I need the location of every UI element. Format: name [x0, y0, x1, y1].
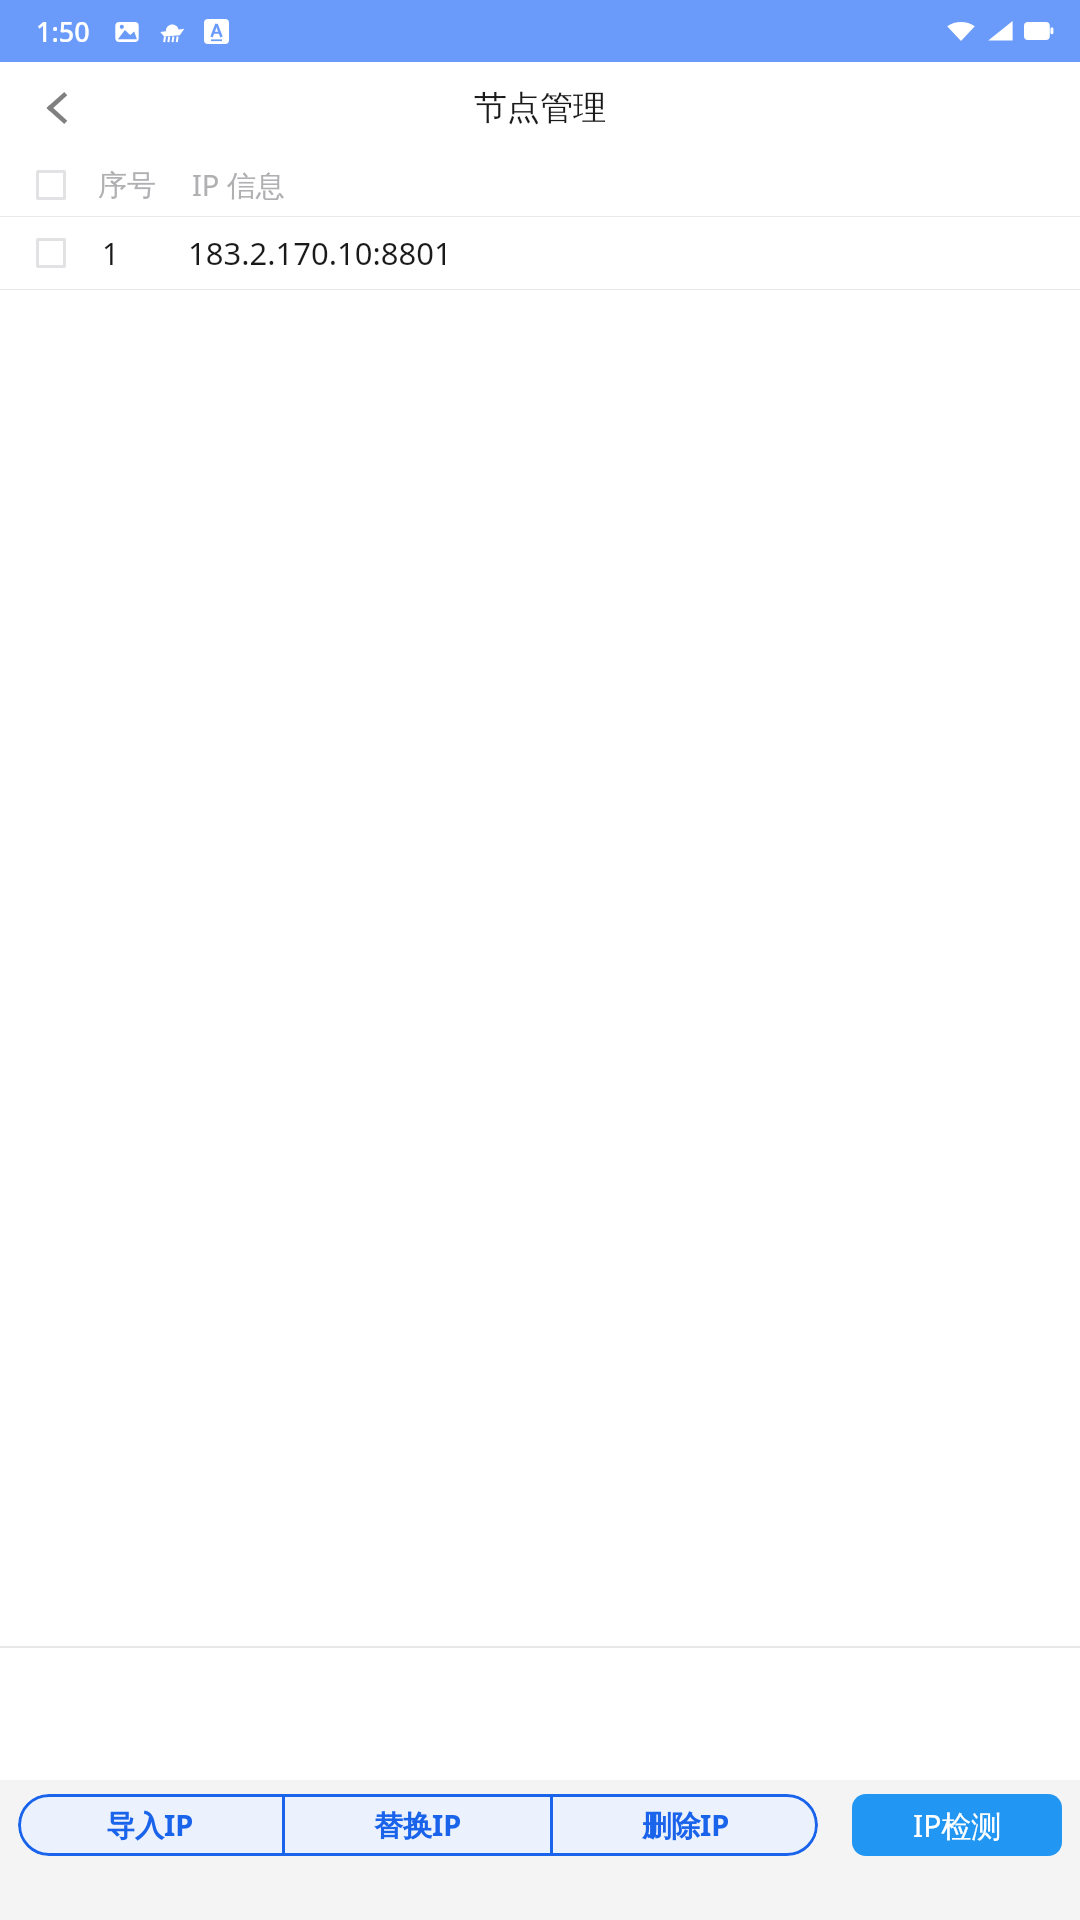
button[interactable]: 删除IP	[553, 1794, 818, 1856]
button[interactable]: 替换IP	[285, 1794, 550, 1856]
button[interactable]: Select	[34, 168, 68, 202]
button[interactable]: Select	[34, 236, 68, 270]
staticText: 节点管理	[474, 87, 606, 129]
staticText: 删除IP	[642, 1805, 730, 1845]
button[interactable]: 导入IP	[18, 1794, 282, 1856]
staticText: 替换IP	[374, 1805, 462, 1845]
button[interactable]: Back	[22, 72, 94, 144]
button[interactable]: Select	[0, 217, 1080, 289]
staticText: IP检测	[913, 1805, 1002, 1846]
staticText: 183.2.170.10:8801	[188, 232, 452, 274]
staticText: 导入IP	[106, 1805, 194, 1845]
staticText: IP 信息	[192, 165, 285, 205]
staticText: 1	[102, 233, 120, 274]
staticText: 序号	[98, 167, 156, 204]
staticText: 1:50	[36, 13, 90, 50]
button[interactable]: IP检测	[852, 1794, 1062, 1856]
